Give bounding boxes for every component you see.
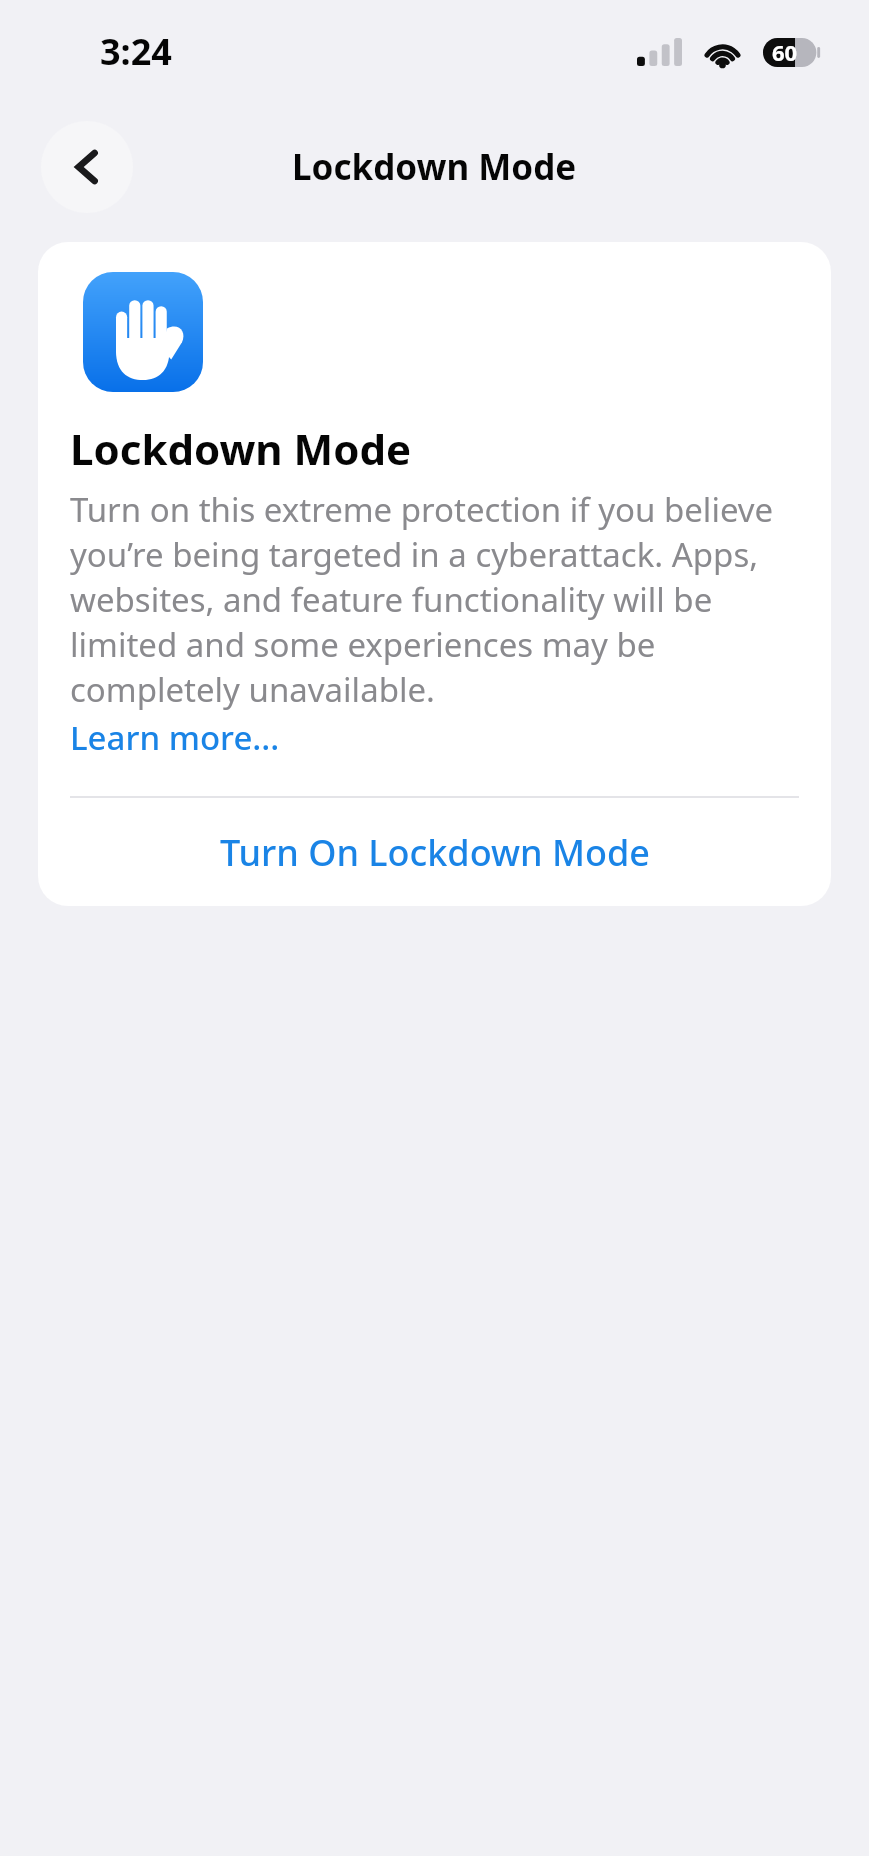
staticText: Turn on this extreme protection if you b… bbox=[70, 487, 805, 712]
button[interactable]: Back bbox=[41, 121, 133, 213]
staticText: Lockdown Mode bbox=[292, 143, 577, 191]
staticText: 3:24 bbox=[100, 27, 172, 76]
staticText: Turn On Lockdown Mode bbox=[220, 828, 650, 877]
staticText: 60 bbox=[772, 37, 798, 67]
button[interactable]: Turn On Lockdown Mode bbox=[38, 798, 831, 906]
staticText: Learn more... bbox=[70, 715, 280, 760]
button[interactable]: Learn more... bbox=[70, 715, 280, 760]
staticText: Lockdown Mode bbox=[70, 420, 412, 477]
